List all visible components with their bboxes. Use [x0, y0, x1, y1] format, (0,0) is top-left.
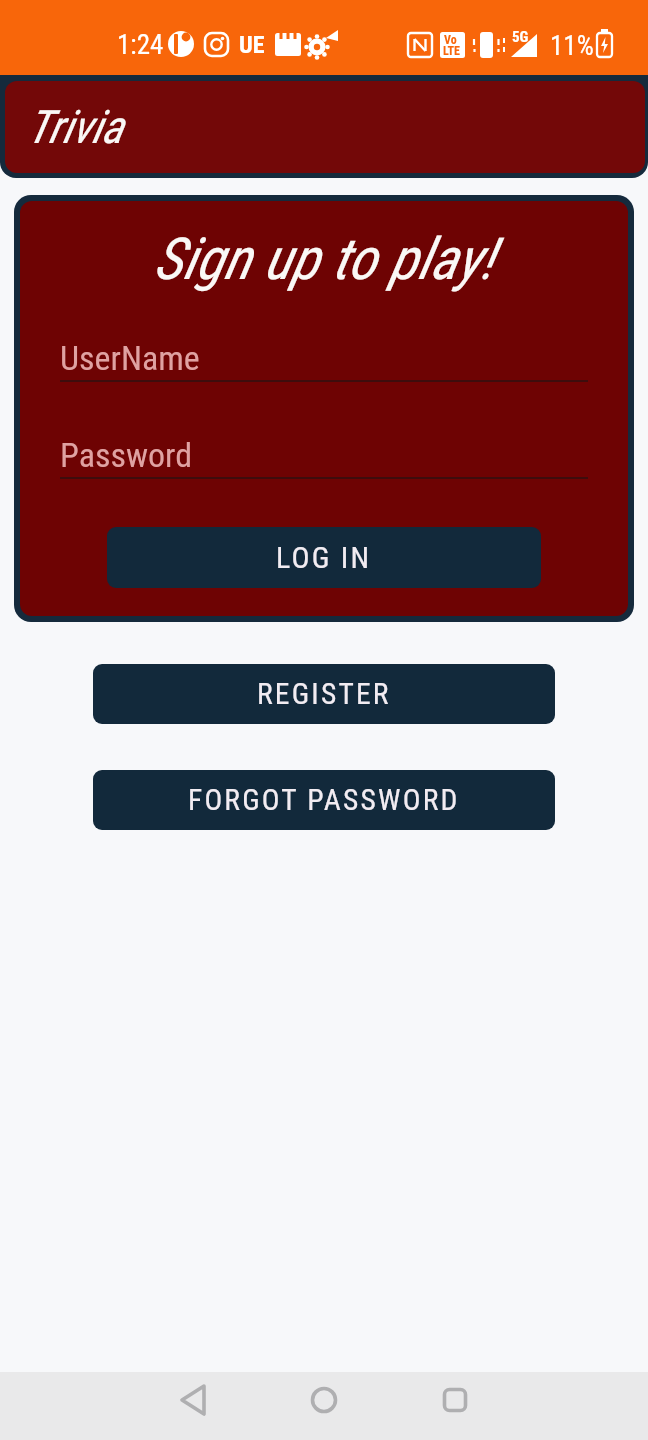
button[interactable]: REGISTER	[93, 664, 555, 724]
staticText: LOG IN	[276, 540, 372, 575]
staticText: Sign up to play!	[60, 225, 588, 293]
staticText: 11%	[550, 30, 594, 62]
button[interactable]: LOG IN	[107, 527, 541, 588]
staticText: 1:24	[117, 29, 164, 61]
button[interactable]: UserName	[60, 338, 588, 378]
staticText: FORGOT PASSWORD	[188, 783, 460, 818]
button[interactable]	[172, 1379, 214, 1421]
staticText: REGISTER	[257, 677, 391, 712]
staticText: 5G	[512, 28, 529, 46]
staticText: LTE	[443, 44, 460, 58]
button[interactable]	[303, 1379, 345, 1421]
button[interactable]	[434, 1379, 476, 1421]
staticText: Vo	[444, 33, 457, 47]
button[interactable]: Password	[60, 435, 588, 475]
staticText: UE	[239, 31, 265, 59]
staticText: Trivia	[27, 100, 124, 154]
button[interactable]: FORGOT PASSWORD	[93, 770, 555, 830]
